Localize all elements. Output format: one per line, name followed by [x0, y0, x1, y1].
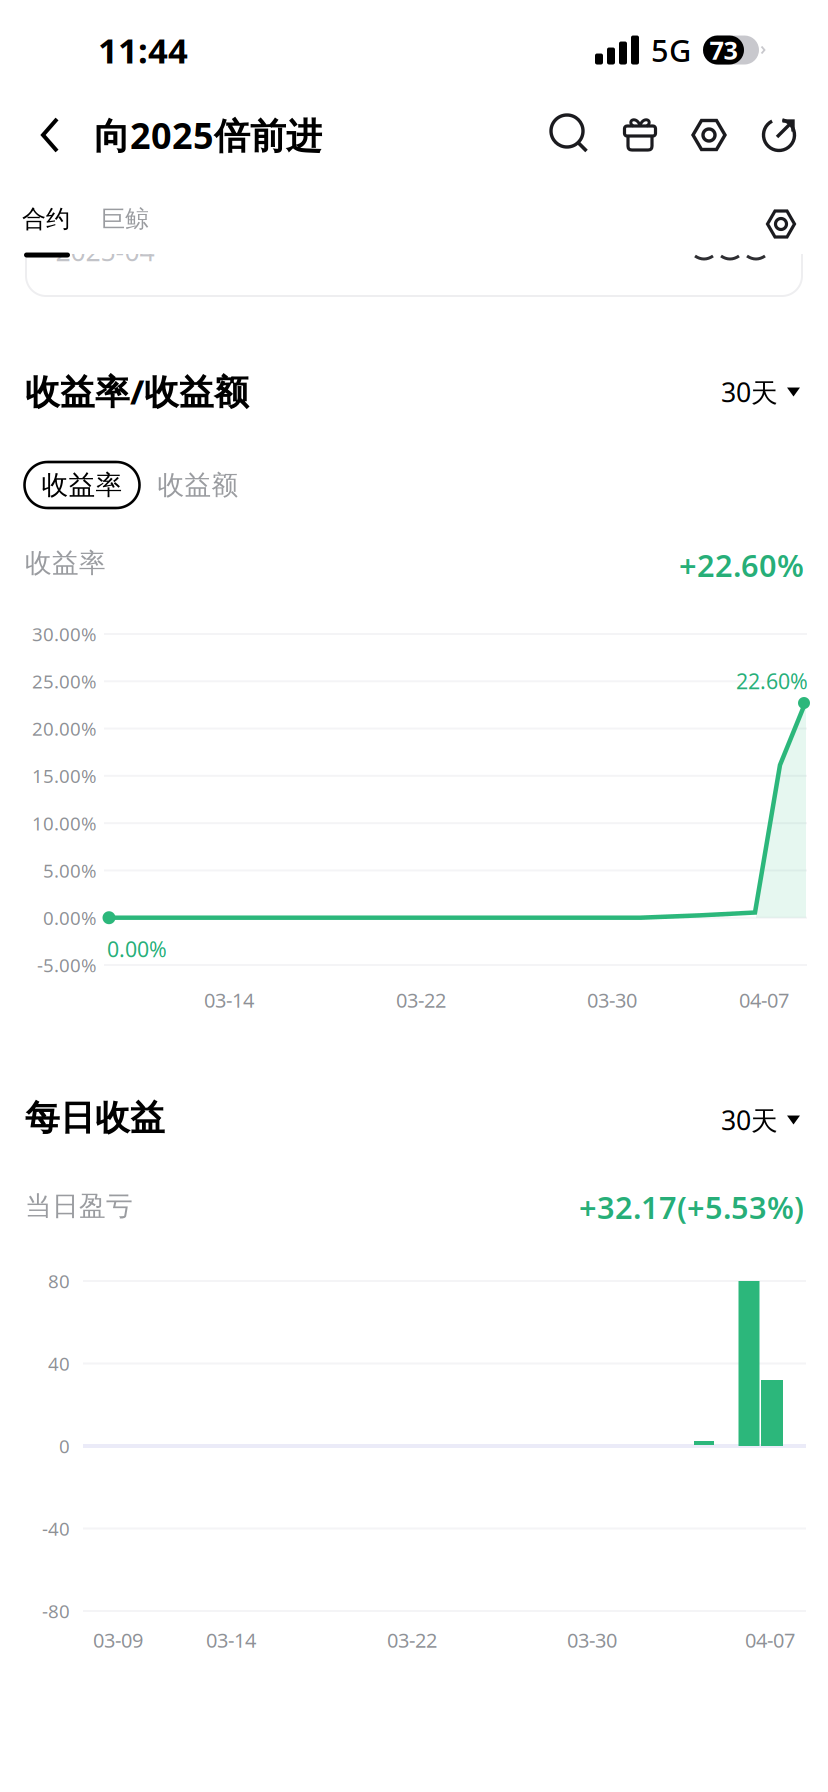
button[interactable]: 巨鲸	[92, 191, 158, 247]
staticText: 向2025倍前进	[94, 111, 322, 159]
staticText: 73	[709, 33, 737, 67]
staticText: 5.00%	[43, 858, 97, 883]
staticText: 04-07	[739, 987, 789, 1013]
button[interactable]: 30天	[680, 364, 800, 420]
button[interactable]: Search	[534, 91, 606, 179]
staticText: 30天	[721, 1102, 778, 1138]
staticText: 30天	[721, 374, 778, 410]
staticText: 巨鲸	[101, 204, 149, 234]
staticText: 收益率	[41, 469, 122, 501]
staticText: 03-14	[204, 987, 254, 1013]
staticText: 20.00%	[32, 716, 97, 741]
button[interactable]: Benefits	[673, 91, 745, 179]
button[interactable]: Back	[14, 91, 86, 179]
staticText: 收益率/收益额	[25, 368, 249, 414]
staticText: 25.00%	[32, 669, 97, 694]
staticText: 15.00%	[32, 763, 97, 788]
button[interactable]: Rewards	[604, 91, 676, 179]
staticText: 80	[48, 1269, 70, 1293]
staticText: 03-09	[93, 1627, 143, 1653]
staticText: 0	[59, 1434, 70, 1458]
button[interactable]: Share	[743, 91, 815, 179]
staticText: 30.00%	[32, 622, 97, 646]
staticText: 收益率	[25, 547, 106, 579]
button[interactable]: 30天	[680, 1092, 800, 1148]
staticText: -80	[42, 1599, 70, 1623]
button[interactable]: 收益率	[24, 462, 139, 508]
staticText: 22.60%	[736, 667, 808, 695]
staticText: 当日盈亏	[25, 1190, 133, 1222]
staticText: 03-30	[567, 1627, 617, 1653]
staticText: 0.00%	[43, 905, 97, 930]
staticText: 5G	[651, 30, 691, 70]
staticText: 04-07	[745, 1627, 795, 1653]
staticText: +22.60%	[679, 545, 804, 585]
staticText: 0.00%	[107, 935, 167, 963]
staticText: +32.17(+5.53%)	[579, 1187, 804, 1227]
staticText: 03-22	[396, 987, 446, 1013]
staticText: -40	[42, 1516, 70, 1541]
staticText: 2025-04	[55, 233, 154, 269]
staticText: 11:44	[98, 27, 188, 73]
button[interactable]: 合约	[14, 191, 78, 247]
button[interactable]: Filter	[755, 198, 807, 250]
button[interactable]: 收益额	[143, 462, 253, 508]
staticText: 03-22	[387, 1627, 437, 1653]
staticText: 03-14	[206, 1627, 256, 1653]
staticText: 每日收益	[25, 1097, 165, 1139]
staticText: -5.00%	[37, 953, 97, 977]
staticText: 收益额	[157, 469, 238, 501]
staticText: 10.00%	[32, 811, 97, 835]
staticText: 合约	[22, 204, 70, 234]
staticText: 03-30	[587, 987, 637, 1013]
staticText: 40	[48, 1351, 70, 1376]
